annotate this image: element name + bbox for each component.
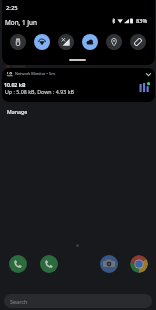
- staticText: 83%: [136, 17, 148, 25]
- button[interactable]: Chrome: [130, 255, 148, 273]
- button[interactable]: Camera: [100, 255, 118, 273]
- button[interactable]: Phone: [40, 255, 58, 273]
- button[interactable]: Phone: [9, 255, 27, 273]
- button[interactable]: Network Monitor • 5m: [2, 68, 155, 102]
- button[interactable]: Manage: [4, 106, 31, 117]
- button[interactable]: Location: [106, 34, 122, 50]
- staticText: 2:25: [6, 4, 18, 12]
- staticText: Mon, 1 Jun: [5, 18, 37, 27]
- staticText: Manage: [7, 108, 28, 115]
- staticText: Up : 5.08 kB, Down : 4.93 kB: [5, 88, 74, 95]
- button[interactable]: Auto-rotate: [130, 34, 146, 50]
- button[interactable]: Night Light: [82, 34, 98, 50]
- button[interactable]: Flashlight: [10, 34, 26, 50]
- button[interactable]: Wi-Fi: [34, 34, 50, 50]
- button[interactable]: Mobile data: [58, 34, 74, 50]
- staticText: Network Monitor • 5m: [15, 71, 55, 76]
- staticText: 10.02 kB: [4, 81, 26, 88]
- staticText: Search: [10, 298, 28, 305]
- button[interactable]: Search: [4, 294, 152, 308]
